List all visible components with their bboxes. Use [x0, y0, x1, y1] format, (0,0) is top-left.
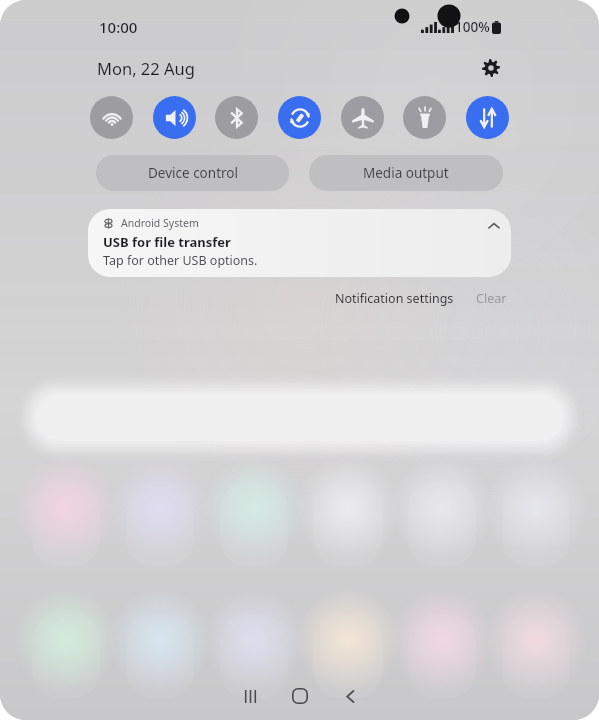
- button[interactable]: Android System: [88, 209, 511, 277]
- staticText: Android System: [121, 216, 199, 230]
- button[interactable]: Bluetooth: [215, 96, 258, 139]
- button[interactable]: Home: [276, 672, 324, 720]
- button[interactable]: Back: [326, 672, 374, 720]
- button[interactable]: Clear: [472, 288, 511, 309]
- button[interactable]: Flashlight: [403, 96, 446, 139]
- staticText: 100%: [455, 18, 490, 36]
- button[interactable]: Auto rotate: [278, 96, 321, 139]
- staticText: Mon, 22 Aug: [97, 57, 195, 79]
- staticText: Clear: [476, 290, 507, 307]
- button[interactable]: Airplane mode: [341, 96, 384, 139]
- button[interactable]: Wi-Fi: [90, 96, 133, 139]
- button[interactable]: Recent apps: [226, 672, 274, 720]
- button[interactable]: Mobile data: [466, 96, 509, 139]
- staticText: Media output: [363, 164, 449, 182]
- button[interactable]: Notification settings: [331, 288, 458, 309]
- staticText: USB for file transfer: [103, 233, 231, 251]
- button[interactable]: Settings: [475, 52, 507, 84]
- staticText: 10:00: [99, 17, 138, 37]
- button[interactable]: Collapse notification: [481, 213, 507, 239]
- button[interactable]: Media output: [309, 155, 503, 191]
- staticText: Device control: [148, 164, 238, 182]
- button[interactable]: Device control: [96, 155, 289, 191]
- button[interactable]: Sound: [153, 96, 196, 139]
- staticText: Tap for other USB options.: [103, 252, 258, 269]
- staticText: Notification settings: [335, 290, 454, 307]
